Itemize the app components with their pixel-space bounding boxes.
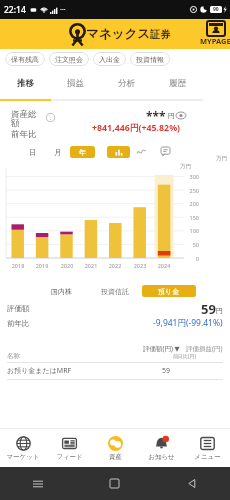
button[interactable]: 国内株 bbox=[34, 285, 88, 297]
button[interactable]: マーケット bbox=[0, 429, 46, 467]
staticText: 万円 bbox=[180, 163, 191, 170]
staticText: 評価損益(円) bbox=[186, 344, 223, 353]
staticText: 59 bbox=[162, 366, 171, 376]
button[interactable]: 投資信託 bbox=[88, 285, 142, 297]
staticText: 評価額(円) ▼ bbox=[143, 344, 180, 353]
staticText: 59 bbox=[201, 300, 216, 316]
button[interactable]: Line chart bbox=[130, 146, 153, 158]
button[interactable]: Show amount bbox=[175, 109, 187, 121]
staticText: マネックス bbox=[86, 26, 150, 42]
staticText: 保有残高 bbox=[11, 55, 39, 64]
staticText: 300 bbox=[185, 173, 199, 180]
staticText: 円 bbox=[168, 112, 175, 120]
staticText: 月 bbox=[54, 148, 62, 157]
button[interactable]: 資産 bbox=[92, 429, 138, 467]
staticText: +841,446円(+45.82%) bbox=[92, 122, 181, 134]
staticText: 前日比(円) bbox=[173, 353, 197, 360]
staticText: 注文照会 bbox=[55, 55, 83, 64]
staticText: 年 bbox=[79, 148, 87, 157]
button[interactable]: お知らせ bbox=[138, 429, 184, 467]
staticText: 200 bbox=[185, 200, 199, 207]
staticText: 投資信託 bbox=[101, 287, 129, 296]
staticText: 90 bbox=[213, 6, 219, 13]
staticText: 証券 bbox=[150, 28, 170, 41]
staticText: 150 bbox=[185, 214, 199, 221]
staticText: 名称 bbox=[7, 352, 20, 360]
button[interactable]: 預り金 bbox=[142, 285, 196, 297]
staticText: 2022 bbox=[106, 262, 124, 269]
button[interactable]: 保有残高 bbox=[5, 52, 45, 66]
button[interactable]: メニュー bbox=[184, 429, 230, 467]
staticText: マーケット bbox=[6, 453, 40, 461]
button[interactable]: Memo bbox=[159, 145, 172, 158]
staticText: 50 bbox=[185, 241, 199, 248]
staticText: お知らせ bbox=[148, 453, 175, 461]
button[interactable]: 入出金 bbox=[93, 52, 126, 66]
staticText: 22:14 bbox=[4, 4, 26, 16]
staticText: 預り金 bbox=[158, 287, 180, 296]
staticText: 万円 bbox=[216, 155, 227, 162]
staticText: 入出金 bbox=[99, 55, 120, 64]
staticText: *** bbox=[146, 108, 166, 124]
button[interactable]: 投資情報 bbox=[130, 52, 170, 66]
staticText: 推移 bbox=[17, 78, 34, 89]
staticText: 投資情報 bbox=[136, 55, 164, 64]
staticText: 分析 bbox=[118, 78, 135, 89]
staticText: 2020 bbox=[58, 262, 76, 269]
staticText: 履歴 bbox=[169, 78, 186, 89]
staticText: ··· bbox=[60, 5, 66, 15]
staticText: 2021 bbox=[82, 262, 100, 269]
staticText: 資産 bbox=[109, 453, 122, 461]
staticText: 損益 bbox=[67, 78, 84, 89]
staticText: 前年比 bbox=[7, 319, 30, 328]
staticText: フィード bbox=[56, 453, 83, 461]
staticText: 評価額 bbox=[7, 304, 30, 313]
button[interactable]: 注文照会 bbox=[49, 52, 89, 66]
staticText: メニュー bbox=[194, 453, 221, 461]
button[interactable]: Bar chart bbox=[107, 146, 130, 158]
staticText: 2018 bbox=[9, 262, 27, 269]
button[interactable]: 履歴 bbox=[152, 68, 203, 99]
staticText: -9,941円(-99.41%) bbox=[153, 317, 223, 329]
button[interactable]: 分析 bbox=[101, 68, 152, 99]
button[interactable]: 損益 bbox=[50, 68, 101, 99]
button[interactable]: お預り金またはMRF bbox=[7, 363, 223, 379]
staticText: 2024 bbox=[155, 262, 173, 269]
staticText: 2023 bbox=[131, 262, 149, 269]
button[interactable]: フィード bbox=[46, 429, 92, 467]
button[interactable]: 日 bbox=[20, 146, 45, 158]
staticText: 100 bbox=[185, 227, 199, 234]
staticText: 額 bbox=[11, 118, 20, 129]
staticText: 0 bbox=[185, 255, 199, 262]
staticText: 円 bbox=[216, 306, 223, 315]
button[interactable]: 年 bbox=[70, 146, 95, 158]
button[interactable]: 推移 bbox=[0, 68, 50, 99]
staticText: 国内株 bbox=[51, 287, 72, 296]
staticText: 資産総 bbox=[11, 109, 37, 120]
button[interactable]: 月 bbox=[45, 146, 70, 158]
staticText: 2019 bbox=[33, 262, 51, 269]
staticText: 日 bbox=[29, 148, 37, 157]
staticText: 前年比 bbox=[11, 129, 37, 140]
staticText: お預り金またはMRF bbox=[7, 366, 72, 376]
staticText: MYPAGE bbox=[200, 36, 230, 46]
button[interactable]: My Page bbox=[200, 21, 230, 46]
staticText: 250 bbox=[185, 187, 199, 194]
